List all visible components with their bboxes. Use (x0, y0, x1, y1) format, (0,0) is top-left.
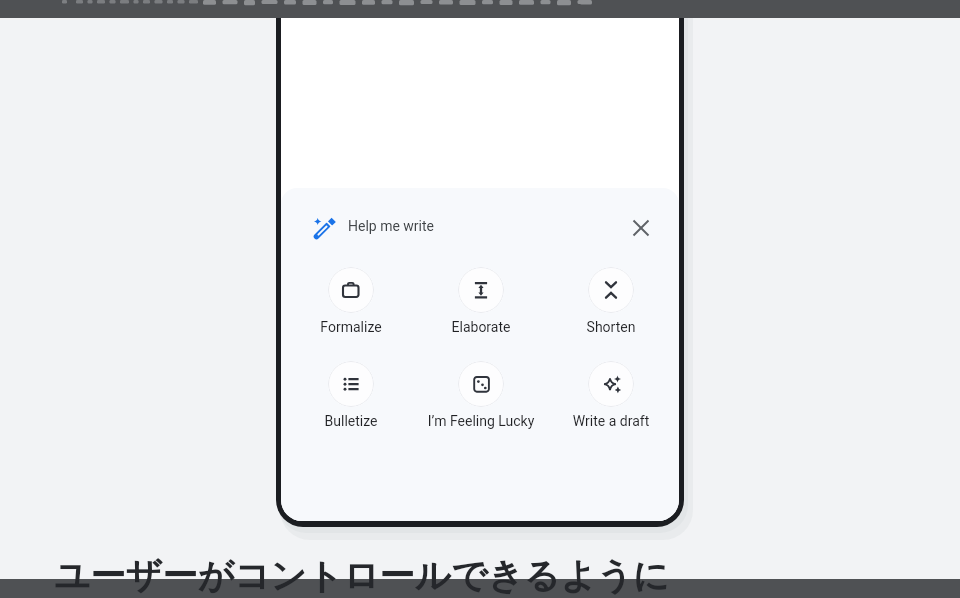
button[interactable]: Elaborate (416, 260, 546, 346)
button[interactable] (619, 206, 663, 250)
button[interactable]: Write a draft (546, 354, 676, 440)
staticText: Bulletize (286, 413, 416, 433)
button[interactable]: I’m Feeling Lucky (416, 354, 546, 440)
button[interactable]: Bulletize (286, 354, 416, 440)
staticText: Help me write (348, 218, 434, 234)
staticText: I’m Feeling Lucky (416, 413, 546, 433)
staticText: ユーザーがコントロールできるように (54, 554, 670, 598)
staticText: Shorten (546, 319, 676, 339)
button[interactable]: Formalize (286, 260, 416, 346)
staticText: Write a draft (546, 413, 676, 433)
staticText: Formalize (286, 319, 416, 339)
staticText: Elaborate (416, 319, 546, 339)
button[interactable]: Shorten (546, 260, 676, 346)
